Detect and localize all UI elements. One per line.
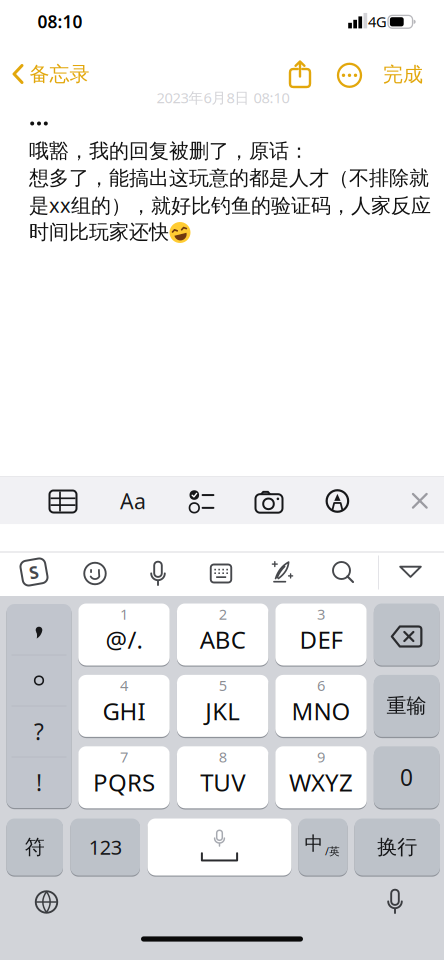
- staticText: 中: [304, 832, 323, 855]
- button[interactable]: 拍照: [255, 491, 282, 513]
- staticText: 1: [120, 604, 128, 624]
- button[interactable]: WXYZ: [275, 746, 367, 808]
- staticText: ?: [34, 716, 44, 746]
- staticText: 哦豁，我的回复被删了，原话：: [29, 139, 309, 163]
- staticText: JKL: [205, 695, 240, 727]
- staticText: 备忘录: [29, 62, 89, 86]
- button[interactable]: 收起键盘: [399, 565, 422, 578]
- button[interactable]: TUV: [177, 746, 268, 808]
- button[interactable]: 表格: [48, 488, 78, 514]
- button[interactable]: 完成: [373, 59, 433, 89]
- button[interactable]: @/.: [78, 603, 170, 665]
- staticText: 完成: [383, 62, 423, 87]
- button[interactable]: ABC: [177, 603, 268, 665]
- staticText: 想多了，能搞出这玩意的都是人才（不排除就: [29, 166, 429, 190]
- button[interactable]: 表情: [83, 562, 106, 585]
- button[interactable]: ！: [7, 757, 71, 807]
- staticText: 08:10: [37, 10, 82, 33]
- staticText: 123: [89, 834, 122, 860]
- staticText: @/.: [105, 624, 142, 655]
- button[interactable]: 。: [7, 655, 71, 705]
- button[interactable]: 0: [374, 746, 439, 808]
- staticText: 时间比玩家还快: [29, 220, 169, 244]
- staticText: 8: [219, 747, 227, 767]
- staticText: WXYZ: [289, 766, 353, 798]
- button[interactable]: 中英切换: [298, 818, 347, 875]
- button[interactable]: 听写: [384, 889, 406, 915]
- button[interactable]: 空格: [147, 818, 291, 875]
- button[interactable]: 分享: [287, 61, 313, 88]
- staticText: TUV: [200, 766, 245, 798]
- staticText: 6: [317, 676, 325, 695]
- button[interactable]: 删除: [374, 603, 439, 665]
- button[interactable]: DEF: [275, 603, 367, 665]
- button[interactable]: 手写输入: [271, 560, 295, 584]
- button[interactable]: ，: [7, 607, 71, 657]
- staticText: S: [29, 560, 39, 583]
- staticText: MNO: [291, 695, 350, 727]
- staticText: ABC: [200, 624, 246, 655]
- staticText: 7: [120, 747, 128, 767]
- staticText: DEF: [299, 624, 342, 655]
- staticText: 0: [400, 762, 413, 792]
- button[interactable]: PQRS: [78, 746, 170, 808]
- staticText: !: [36, 767, 42, 797]
- button[interactable]: GHI: [78, 675, 170, 737]
- button[interactable]: 重输: [374, 675, 439, 737]
- staticText: Aa: [120, 487, 146, 515]
- staticText: 是xx组的），就好比钓鱼的验证码，人家反应: [29, 192, 431, 218]
- staticText: 5: [219, 676, 227, 695]
- staticText: 9: [317, 747, 325, 767]
- button[interactable]: 标记: [326, 489, 349, 512]
- button[interactable]: 语音输入: [147, 561, 169, 587]
- button[interactable]: 换行: [354, 818, 440, 875]
- staticText: 重输: [387, 694, 427, 718]
- staticText: 4: [120, 676, 128, 695]
- button[interactable]: JKL: [177, 675, 268, 737]
- staticText: /英: [325, 844, 340, 858]
- button[interactable]: 返回备忘录: [9, 59, 93, 89]
- button[interactable]: 搜索: [332, 561, 354, 583]
- button[interactable]: 符号: [6, 818, 63, 875]
- button[interactable]: 切换输入法: [34, 890, 58, 914]
- button[interactable]: 更多: [337, 63, 362, 88]
- button[interactable]: 键盘布局: [209, 562, 232, 585]
- button[interactable]: 关闭: [412, 493, 428, 509]
- button[interactable]: 数字: [70, 818, 140, 875]
- button[interactable]: 搜狗输入法: [19, 557, 49, 587]
- staticText: 3: [317, 604, 325, 624]
- button[interactable]: MNO: [275, 675, 367, 737]
- button[interactable]: 格式: [115, 486, 151, 516]
- staticText: 2: [219, 604, 227, 624]
- staticText: 4G: [368, 12, 387, 31]
- staticText: GHI: [102, 695, 145, 727]
- button[interactable]: 核对清单: [189, 490, 214, 513]
- staticText: PQRS: [93, 766, 155, 798]
- staticText: 符: [25, 835, 45, 859]
- button[interactable]: ？: [7, 706, 71, 756]
- staticText: 换行: [377, 835, 417, 859]
- staticText: 2023年6月8日 08:10: [156, 88, 289, 107]
